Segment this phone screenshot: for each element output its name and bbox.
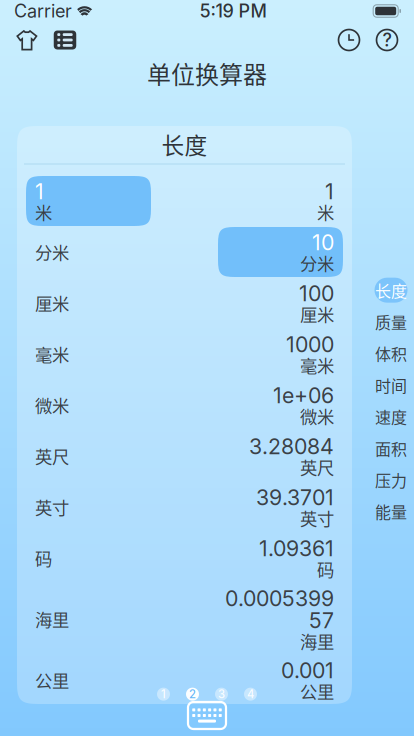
staticText: 微米: [35, 392, 69, 418]
staticText: 0.0005399: [225, 586, 334, 611]
staticText: 速度: [375, 405, 407, 428]
staticText: 毫米: [300, 352, 334, 378]
staticText: 1e+06: [273, 383, 334, 408]
button[interactable]: 码: [17, 532, 352, 583]
button[interactable]: 英寸: [17, 481, 352, 532]
button[interactable]: Themes: [8, 24, 46, 56]
button[interactable]: 海里: [17, 583, 352, 654]
staticText: 英寸: [35, 494, 69, 520]
staticText: 4: [247, 687, 254, 701]
staticText: 长度: [375, 279, 407, 302]
staticText: 码: [317, 556, 334, 582]
staticText: 能量: [375, 500, 407, 523]
staticText: 毫米: [35, 341, 69, 367]
button[interactable]: Unit list: [46, 24, 84, 56]
staticText: ?: [382, 29, 391, 51]
staticText: 微米: [300, 403, 334, 429]
staticText: 3.28084: [249, 434, 334, 459]
button[interactable]: 微米: [17, 379, 352, 430]
staticText: 1: [35, 179, 44, 204]
button[interactable]: 1: [17, 175, 352, 226]
button[interactable]: History: [330, 24, 368, 56]
staticText: 英寸: [300, 505, 334, 531]
button[interactable]: 质量: [374, 306, 407, 338]
staticText: 0.001: [281, 658, 334, 683]
button[interactable]: 时间: [374, 369, 407, 401]
staticText: 公里: [300, 678, 334, 704]
staticText: 3: [218, 687, 225, 701]
staticText: 5:19 PM: [200, 0, 267, 22]
staticText: 面积: [375, 437, 407, 460]
button[interactable]: 速度: [374, 401, 407, 432]
staticText: Carrier: [14, 0, 72, 22]
staticText: 1: [325, 179, 334, 204]
button[interactable]: Keyboard: [188, 702, 226, 729]
staticText: 39.3701: [256, 485, 334, 510]
staticText: 厘米: [300, 301, 334, 327]
staticText: 长度: [161, 128, 207, 160]
staticText: 10: [312, 230, 334, 255]
button[interactable]: Help: [368, 24, 406, 56]
staticText: 码: [35, 545, 52, 571]
staticText: 公里: [35, 667, 69, 693]
button[interactable]: 压力: [374, 464, 407, 496]
staticText: 海里: [35, 606, 69, 632]
staticText: 米: [317, 199, 334, 225]
staticText: 英尺: [300, 454, 334, 480]
staticText: 体积: [375, 342, 407, 365]
button[interactable]: 长度: [374, 274, 407, 306]
staticText: 英尺: [35, 443, 69, 469]
staticText: 2: [189, 687, 196, 701]
button[interactable]: 英尺: [17, 430, 352, 481]
staticText: 米: [35, 199, 52, 225]
button[interactable]: 公里: [17, 654, 352, 705]
staticText: 分米: [35, 239, 69, 265]
button[interactable]: 毫米: [17, 328, 352, 379]
staticText: 厘米: [35, 290, 69, 316]
staticText: 57: [309, 608, 334, 633]
staticText: 1000: [286, 332, 334, 357]
button[interactable]: 厘米: [17, 277, 352, 328]
button[interactable]: 体积: [374, 338, 407, 369]
button[interactable]: 分米: [17, 226, 352, 277]
staticText: 100: [299, 281, 334, 306]
staticText: 单位换算器: [147, 56, 267, 90]
staticText: 1.09361: [259, 536, 334, 561]
staticText: 海里: [300, 628, 334, 654]
button[interactable]: 面积: [374, 432, 407, 464]
staticText: 压力: [375, 468, 407, 491]
button[interactable]: 能量: [374, 496, 407, 527]
staticText: 分米: [300, 250, 334, 276]
staticText: 1: [161, 687, 166, 701]
staticText: 质量: [375, 310, 407, 333]
staticText: 时间: [375, 373, 407, 397]
